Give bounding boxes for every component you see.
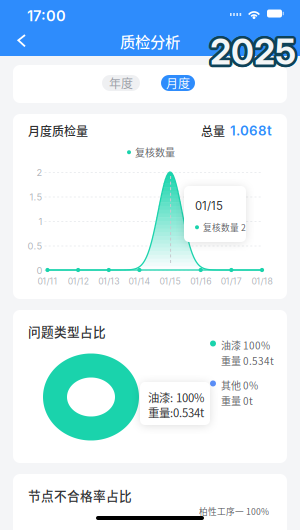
- staticText: 2025: [207, 31, 293, 73]
- staticText: 2025: [208, 29, 294, 71]
- staticText: 2025: [210, 28, 296, 70]
- staticText: 2025: [210, 31, 296, 73]
- staticText: 问题类型占比: [28, 322, 106, 340]
- staticText: 01/13: [98, 276, 119, 286]
- staticText: 0: [36, 265, 42, 276]
- staticText: 复核数量 2: [203, 221, 246, 233]
- staticText: 2025: [212, 30, 298, 72]
- staticText: 质检分析: [120, 30, 180, 52]
- button[interactable]: Back: [7, 30, 39, 56]
- staticText: 年度: [109, 74, 133, 92]
- staticText: 油漆 100%: [221, 338, 270, 352]
- staticText: 2025: [210, 34, 296, 75]
- staticText: 1.5: [29, 191, 42, 203]
- staticText: 2025: [211, 29, 297, 70]
- staticText: 柏性工序一 100%: [199, 505, 269, 517]
- staticText: 2025: [208, 33, 294, 75]
- staticText: 0.5: [27, 240, 42, 252]
- staticText: 01/18: [251, 276, 272, 286]
- staticText: 2025: [208, 32, 294, 74]
- staticText: 2025: [208, 30, 294, 72]
- staticText: 油漆: 100%: [148, 389, 204, 405]
- staticText: 其他 0%: [221, 378, 258, 392]
- staticText: 2025: [212, 33, 298, 75]
- staticText: 月度质检量: [28, 122, 88, 139]
- staticText: 17:00: [27, 7, 66, 25]
- button[interactable]: 月度: [161, 75, 195, 91]
- staticText: 重量 0t: [221, 393, 253, 408]
- staticText: 01/15: [195, 199, 223, 213]
- staticText: 复核数量: [135, 145, 175, 159]
- staticText: 月度: [166, 74, 190, 92]
- staticText: 2: [36, 167, 42, 178]
- staticText: 2025: [209, 29, 295, 70]
- staticText: 1.068t: [230, 123, 272, 139]
- staticText: 01/16: [190, 276, 211, 286]
- staticText: 2025: [212, 29, 298, 71]
- staticText: 01/17: [221, 276, 242, 286]
- staticText: 01/14: [128, 276, 150, 286]
- staticText: 重量 0.534t: [221, 353, 274, 368]
- staticText: 1: [38, 216, 42, 227]
- staticText: 01/11: [37, 276, 57, 286]
- staticText: 总量: [201, 122, 225, 139]
- staticText: 2025: [211, 33, 297, 75]
- staticText: 2025: [209, 33, 295, 75]
- staticText: 2025: [212, 32, 298, 74]
- staticText: 2025: [213, 31, 299, 73]
- staticText: 01/12: [68, 276, 89, 286]
- staticText: 01/15: [160, 276, 181, 286]
- staticText: 重量:0.534t: [148, 404, 204, 420]
- staticText: 节点不合格率占比: [28, 486, 132, 504]
- button[interactable]: 年度: [102, 75, 140, 91]
